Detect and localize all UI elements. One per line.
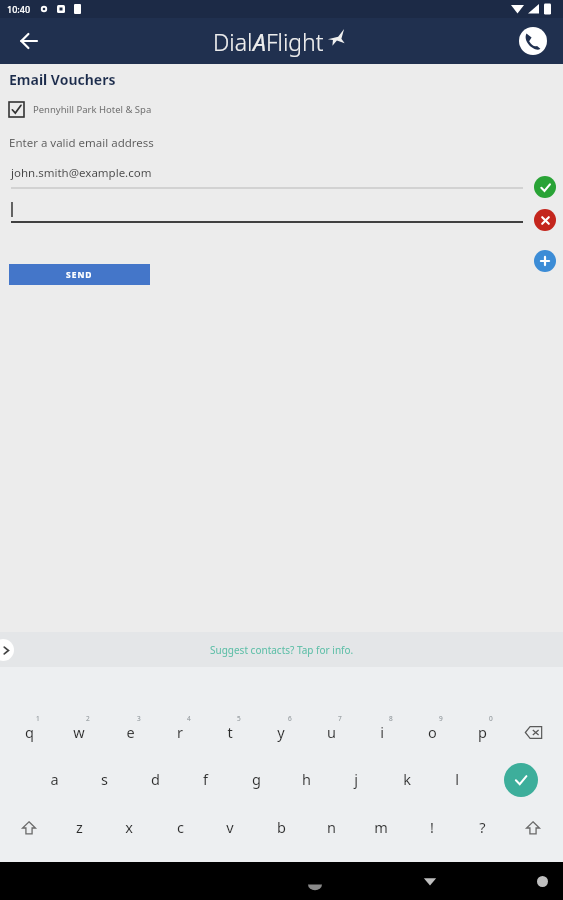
staticText: i — [380, 722, 384, 742]
staticText: w — [73, 722, 85, 742]
staticText: q — [25, 722, 34, 742]
button[interactable]: SEND — [9, 264, 150, 285]
button[interactable] — [180, 757, 230, 804]
staticText: ! — [430, 817, 434, 837]
button[interactable] — [0, 199, 563, 224]
button[interactable] — [130, 757, 180, 804]
staticText: o — [428, 722, 437, 742]
staticText: l — [455, 769, 459, 789]
button[interactable] — [256, 709, 306, 756]
staticText: SEND — [66, 269, 93, 281]
button[interactable] — [407, 853, 457, 897]
button[interactable]: At sign — [55, 853, 105, 897]
button[interactable]: Shift right — [508, 805, 558, 851]
staticText: f — [203, 769, 208, 789]
button[interactable] — [306, 709, 356, 756]
button[interactable]: john.smith@example.com — [0, 165, 563, 189]
staticText: Flight — [266, 26, 324, 57]
staticText: Pennyhill Park Hotel & Spa — [33, 103, 152, 116]
staticText: 6 — [288, 714, 292, 723]
staticText: p — [478, 722, 487, 742]
staticText: e — [126, 722, 135, 742]
button[interactable]: Suggest contacts? Tap for info. — [0, 632, 563, 667]
button[interactable] — [4, 709, 54, 756]
staticText: 7 — [338, 714, 342, 723]
button[interactable] — [29, 757, 79, 804]
button[interactable]: Add email — [534, 250, 556, 272]
staticText: 3 — [137, 714, 141, 723]
staticText: z — [76, 817, 83, 837]
staticText: m — [374, 817, 388, 837]
button[interactable] — [458, 853, 508, 897]
button[interactable]: Expand suggestions — [0, 639, 14, 661]
button[interactable] — [54, 805, 104, 852]
staticText: john.smith@example.com — [11, 165, 152, 181]
button[interactable] — [79, 757, 129, 804]
button[interactable] — [508, 853, 558, 897]
staticText: y — [277, 722, 285, 742]
staticText: 2 — [86, 714, 90, 723]
staticText: Suggest contacts? Tap for info. — [210, 643, 354, 657]
staticText: Email Vouchers — [9, 70, 116, 89]
staticText: ?123 — [521, 864, 545, 879]
button[interactable] — [457, 709, 507, 756]
button[interactable]: Enter — [504, 763, 538, 797]
button[interactable] — [155, 709, 205, 756]
button[interactable] — [331, 757, 381, 804]
staticText: b — [277, 817, 286, 837]
button[interactable] — [357, 709, 407, 756]
button[interactable] — [432, 757, 482, 804]
button[interactable] — [457, 805, 507, 852]
staticText: Dial — [213, 26, 253, 57]
button[interactable]: Back — [10, 22, 48, 60]
button[interactable] — [382, 757, 432, 804]
button[interactable] — [356, 805, 406, 852]
staticText: s — [101, 769, 108, 789]
button[interactable]: Backspace — [509, 709, 557, 756]
staticText: r — [177, 722, 183, 742]
button[interactable]: Shift — [4, 805, 54, 851]
button[interactable] — [256, 805, 306, 852]
staticText: Enter a valid email address — [9, 135, 154, 151]
button[interactable] — [407, 709, 457, 756]
button[interactable] — [231, 757, 281, 804]
button[interactable] — [54, 709, 104, 756]
button[interactable] — [407, 805, 457, 852]
button[interactable]: Remove — [534, 209, 556, 231]
button[interactable]: Pennyhill Park Hotel & Spa — [9, 102, 152, 117]
staticText: v — [226, 817, 234, 837]
staticText: 8 — [389, 714, 393, 723]
button[interactable] — [205, 709, 255, 756]
button[interactable]: Valid — [534, 176, 556, 198]
staticText: 1 — [36, 714, 40, 723]
staticText: A — [253, 26, 266, 57]
staticText: n — [327, 817, 336, 837]
staticText: 10:40 — [7, 3, 31, 15]
staticText: h — [302, 769, 311, 789]
button[interactable]: Home — [261, 862, 563, 900]
button[interactable] — [105, 709, 155, 756]
button[interactable] — [281, 757, 331, 804]
staticText: t — [227, 722, 233, 742]
staticText: x — [125, 817, 133, 837]
button[interactable] — [4, 853, 54, 897]
button[interactable] — [306, 805, 356, 852]
button[interactable]: Recent apps — [374, 862, 563, 900]
button[interactable] — [205, 805, 255, 852]
staticText: 4 — [187, 714, 191, 723]
staticText: g — [252, 769, 261, 789]
button[interactable]: Back — [148, 862, 563, 900]
button[interactable]: Dial — [213, 26, 345, 57]
staticText: a — [50, 769, 59, 789]
staticText: d — [151, 769, 160, 789]
staticText: 9 — [439, 714, 443, 723]
staticText: u — [327, 722, 336, 742]
staticText: ? — [479, 817, 486, 837]
button[interactable] — [104, 805, 154, 852]
button[interactable] — [155, 805, 205, 852]
staticText: k — [403, 769, 411, 789]
button[interactable]: Call — [513, 21, 553, 61]
